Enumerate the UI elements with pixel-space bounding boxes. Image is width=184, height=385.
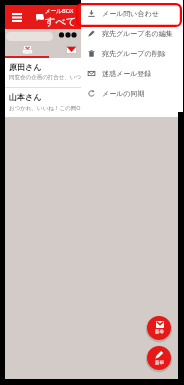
staticText: メールBOX [45,7,74,15]
button[interactable]: New mail [147,316,171,340]
button[interactable]: Compose [147,346,171,370]
staticText: 新着 [155,329,164,335]
button[interactable]: 山本さん [5,88,178,117]
button[interactable]: 原田さん [5,58,178,87]
button[interactable]: All mail tab [49,43,93,56]
staticText: 迷惑メール登録 [102,69,152,78]
button[interactable]: Unread tab [5,43,49,56]
staticText: 宛先グループの削除 [102,49,166,58]
button[interactable]: メールの同期 [81,83,183,103]
button[interactable]: Search [6,32,53,41]
button[interactable]: 宛先グループ名の編集 [81,23,183,43]
staticText: メールの同期 [102,89,145,98]
staticText: 同窓会の企画の打合せ、いつに [9,74,87,81]
button[interactable]: 宛先グループの削除 [81,43,183,63]
button[interactable]: Messages [31,5,48,29]
staticText: 新規 [155,360,164,366]
button[interactable]: More options [57,29,79,43]
button[interactable]: メールBOX [45,5,77,29]
button[interactable]: メール問い合わせ [81,3,183,23]
staticText: メール問い合わせ [102,9,159,18]
staticText: 宛先グループ名の編集 [102,29,173,38]
staticText: 原田さん [9,62,42,72]
button[interactable]: 迷惑メール登録 [81,63,183,83]
staticText: すべて [45,15,77,28]
button[interactable]: Menu [5,5,28,29]
staticText: 山本さん [9,92,42,102]
staticText: おつかれ、いいね！この間OPE [9,104,87,112]
